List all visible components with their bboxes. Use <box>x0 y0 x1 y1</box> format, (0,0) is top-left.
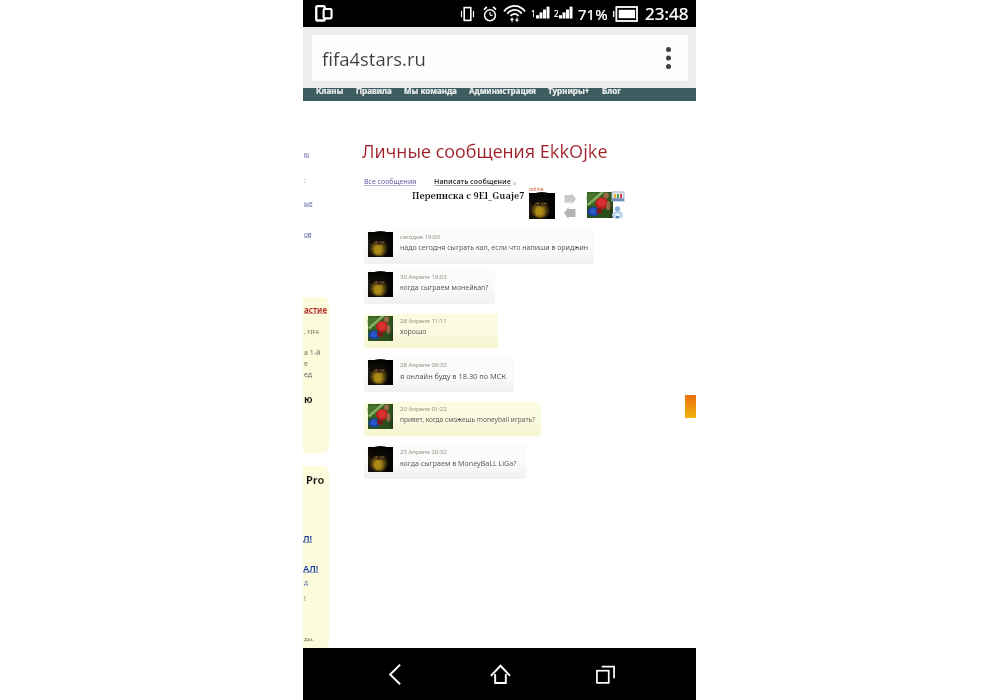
staticText: 25 Апреля 20:32 <box>400 448 447 456</box>
staticText: Турниры+ <box>548 88 590 96</box>
staticText: ов <box>304 230 312 239</box>
button[interactable]: fifa4stars.ru <box>312 35 688 81</box>
staticText: Мы команда <box>404 88 457 96</box>
other: Multi window <box>315 5 333 23</box>
staticText: 30 Апреля 19:03 <box>400 273 447 281</box>
staticText: ю <box>304 392 313 406</box>
button[interactable]: 30 Апреля 19:03 <box>364 270 495 304</box>
staticText: online <box>529 186 544 193</box>
staticText: е <box>304 359 308 369</box>
staticText: ! <box>304 594 306 603</box>
button[interactable]: Кланы <box>310 88 350 96</box>
button[interactable]: 20 Апреля 01:22 <box>364 402 541 436</box>
staticText: Кланы <box>316 88 344 96</box>
staticText: 28 Апреля 09:32 <box>400 361 447 369</box>
staticText: 23:48 <box>645 2 689 25</box>
staticText: Написать сообщение <box>434 177 511 187</box>
staticText: 2 <box>554 8 559 19</box>
button[interactable]: More options <box>648 38 688 78</box>
button[interactable]: 28 Апреля 11:11 <box>364 314 498 348</box>
staticText: o <box>513 180 517 187</box>
staticText: fifa4stars.ru <box>322 46 426 71</box>
staticText: АЛ! <box>303 562 319 574</box>
staticText: , FIFA <box>304 328 320 336</box>
staticText: Pro <box>306 472 325 487</box>
staticText: д <box>304 578 308 587</box>
button[interactable]: Блог <box>596 88 627 96</box>
button[interactable]: Мы команда <box>398 88 463 96</box>
staticText: когда сыграем монейкап? <box>400 283 489 293</box>
staticText: я онлайн буду в 18.30 по МСК <box>400 371 507 381</box>
button[interactable]: 28 Апреля 09:32 <box>364 358 514 392</box>
staticText: привет, когда сможешь moneyball играть? <box>400 415 535 424</box>
button[interactable]: Feedback <box>685 395 696 418</box>
button[interactable]: Back <box>372 648 416 700</box>
staticText: Л! <box>303 532 313 544</box>
staticText: хорошо <box>400 327 427 337</box>
button[interactable]: Правила <box>350 88 398 96</box>
staticText: ды, <box>304 635 314 643</box>
staticText: Личные сообщения EkkOjke <box>362 139 608 164</box>
staticText: надо сегодня сыграть кап, если что напиш… <box>400 243 589 253</box>
staticText: 28 Апреля 11:11 <box>400 317 447 325</box>
staticText: ые <box>304 199 313 208</box>
staticText: Администрация <box>469 88 536 96</box>
staticText: Все сообщения <box>364 177 417 187</box>
staticText: 71% <box>578 4 608 24</box>
staticText: Блог <box>602 88 621 96</box>
button[interactable]: Все сообщения <box>364 177 417 187</box>
button[interactable]: 25 Апреля 20:32 <box>364 445 526 479</box>
staticText: Правила <box>356 88 392 96</box>
button[interactable]: Написать сообщение <box>434 177 511 187</box>
staticText: ед <box>304 370 313 380</box>
button[interactable]: сегодня 19:03 <box>364 230 594 264</box>
staticText: а 1-й <box>304 348 321 358</box>
staticText: астие <box>304 304 328 315</box>
staticText: 1 <box>531 8 536 19</box>
staticText: ю <box>304 150 310 159</box>
staticText: : <box>304 176 306 185</box>
staticText: когда сыграем в MoneyBaLL LiGa? <box>400 458 517 468</box>
staticText: сегодня 19:03 <box>400 233 440 241</box>
button[interactable]: Recent apps <box>583 648 627 700</box>
button[interactable]: Home <box>478 648 522 700</box>
staticText: Переписка с 9El_Guaje7 <box>412 189 525 202</box>
button[interactable]: Администрация <box>463 88 542 96</box>
staticText: 20 Апреля 01:22 <box>400 405 447 413</box>
button[interactable]: Турниры+ <box>542 88 596 96</box>
